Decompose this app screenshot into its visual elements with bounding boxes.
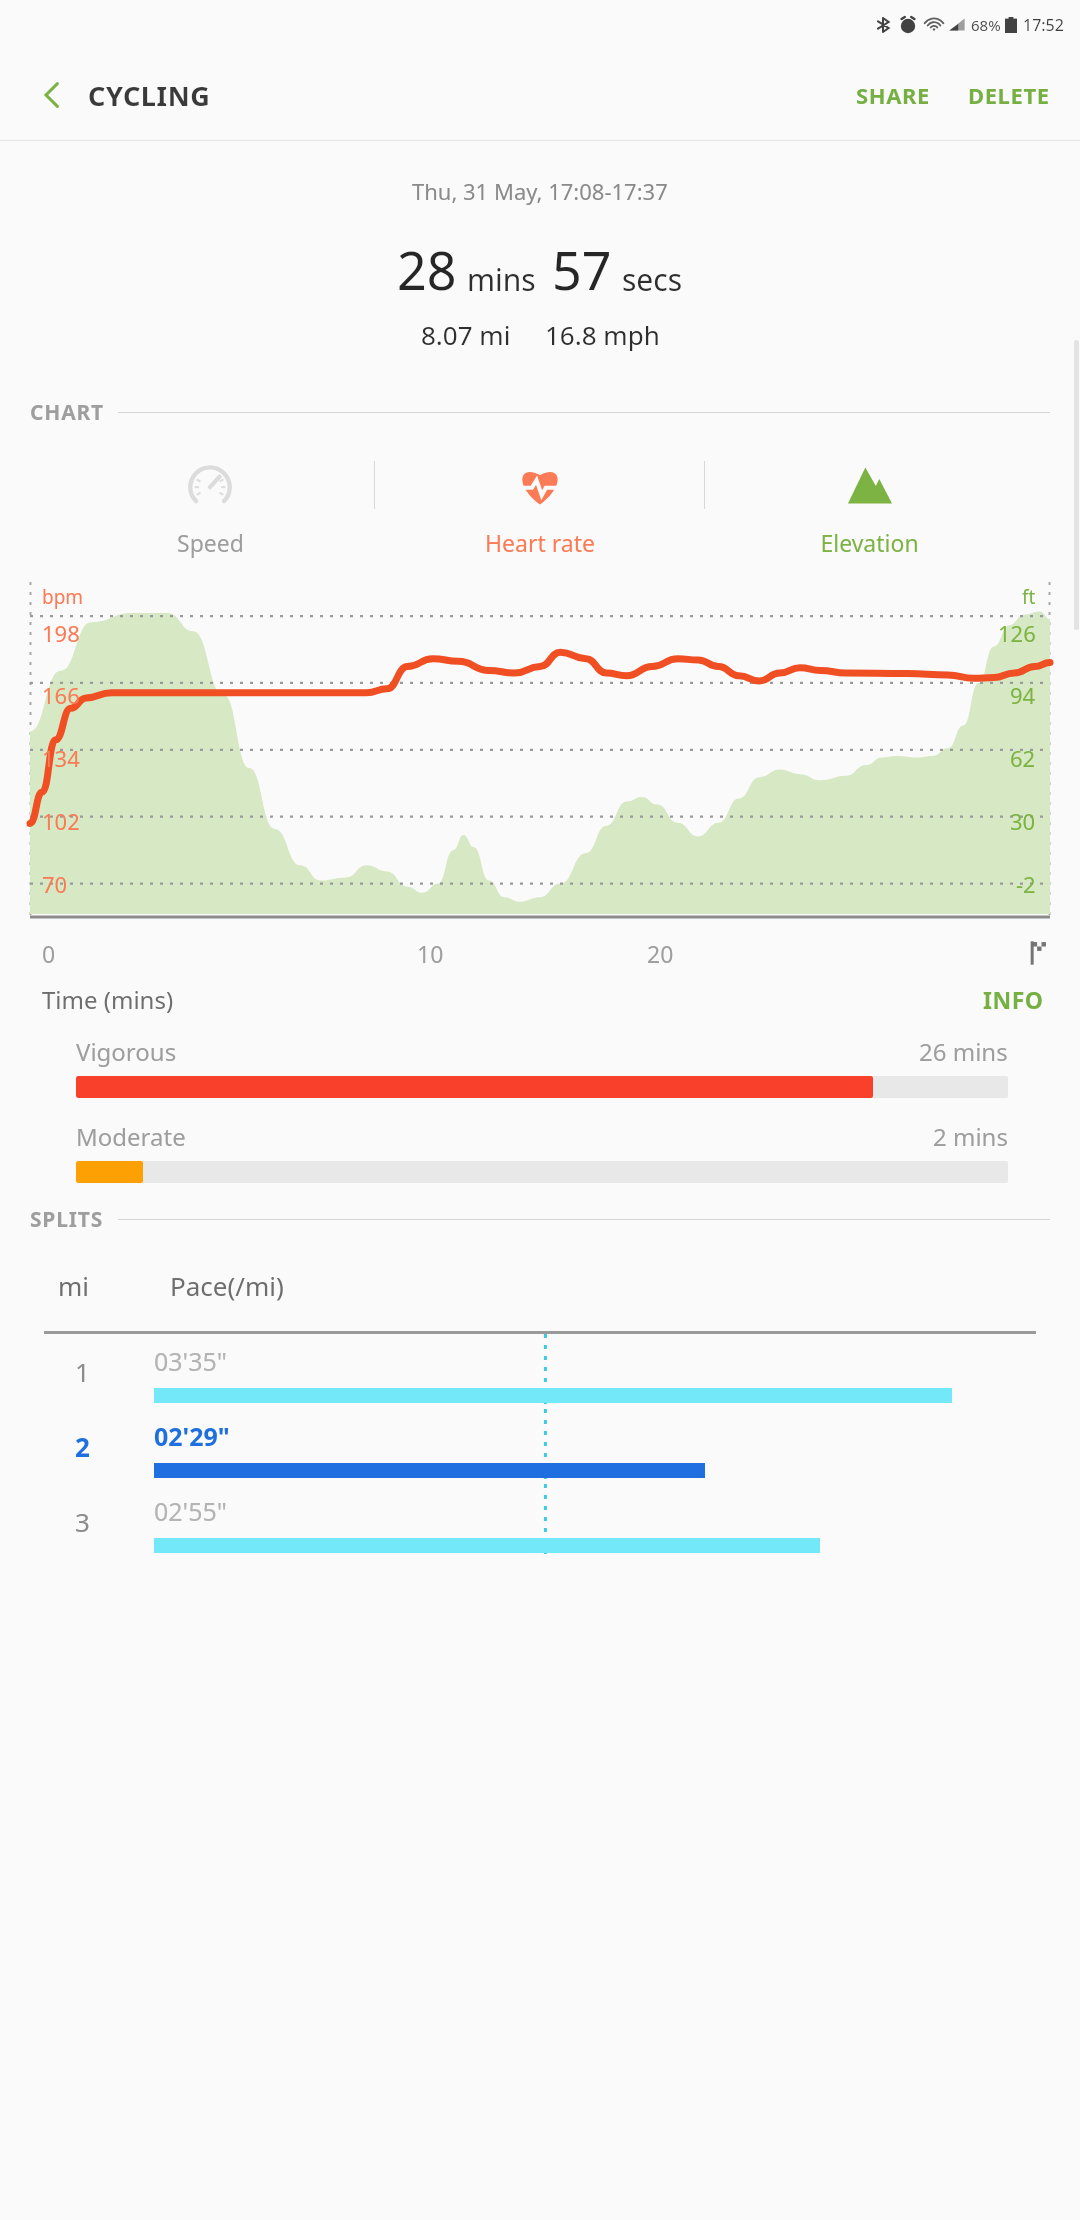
- staticText: 57: [552, 234, 612, 305]
- staticText: 02'55": [154, 1494, 228, 1528]
- staticText: Vigorous: [76, 1035, 177, 1068]
- staticText: 2: [75, 1429, 90, 1464]
- staticText: 16.8 mph: [545, 317, 660, 352]
- staticText: Time (mins): [42, 983, 174, 1016]
- button[interactable]: 2: [0, 1409, 1080, 1484]
- staticText: 0: [42, 938, 56, 969]
- button[interactable]: INFO: [977, 978, 1050, 1021]
- staticText: Elevation: [820, 527, 919, 558]
- staticText: INFO: [983, 984, 1044, 1015]
- staticText: 94: [1010, 680, 1036, 710]
- staticText: 198: [42, 618, 80, 648]
- staticText: 20: [647, 938, 674, 969]
- staticText: DELETE: [968, 80, 1050, 110]
- staticText: 26 mins: [919, 1035, 1008, 1068]
- button[interactable]: Elevation: [705, 453, 1034, 562]
- staticText: Heart rate: [485, 527, 595, 558]
- staticText: Thu, 31 May, 17:08-17:37: [412, 176, 668, 206]
- staticText: 17:52: [1023, 14, 1064, 36]
- staticText: 3: [75, 1504, 90, 1539]
- button[interactable]: Speed: [46, 453, 374, 562]
- button[interactable]: Heart rate: [375, 453, 704, 562]
- staticText: 03'35": [154, 1344, 228, 1378]
- button[interactable]: DELETE: [962, 66, 1056, 124]
- staticText: 2 mins: [933, 1120, 1008, 1153]
- staticText: mi: [58, 1268, 90, 1303]
- staticText: 166: [42, 680, 80, 710]
- staticText: -2: [1016, 869, 1036, 899]
- staticText: 8.07 mi: [421, 317, 511, 352]
- staticText: SHARE: [856, 80, 930, 110]
- staticText: 30: [1010, 806, 1036, 836]
- button[interactable]: Back: [26, 69, 78, 121]
- button[interactable]: SHARE: [846, 66, 940, 124]
- staticText: 28: [397, 234, 457, 305]
- staticText: CYCLING: [88, 77, 211, 114]
- staticText: 62: [1010, 743, 1036, 773]
- staticText: ft: [1022, 584, 1036, 610]
- staticText: bpm: [42, 584, 84, 610]
- staticText: 10: [417, 938, 444, 969]
- staticText: CHART: [30, 398, 104, 427]
- staticText: mins: [467, 259, 536, 300]
- staticText: SPLITS: [30, 1205, 104, 1234]
- staticText: 126: [998, 618, 1036, 648]
- staticText: 1: [75, 1354, 90, 1389]
- staticText: 68%: [971, 15, 1001, 35]
- staticText: Moderate: [76, 1120, 186, 1153]
- button[interactable]: 3: [0, 1484, 1080, 1559]
- staticText: Pace(/mi): [170, 1268, 284, 1303]
- staticText: 02'29": [154, 1419, 230, 1453]
- staticText: 102: [42, 806, 80, 836]
- staticText: 70: [42, 869, 68, 899]
- button[interactable]: 1: [0, 1334, 1080, 1409]
- staticText: secs: [622, 259, 683, 300]
- staticText: Speed: [177, 527, 244, 558]
- staticText: 134: [42, 743, 80, 773]
